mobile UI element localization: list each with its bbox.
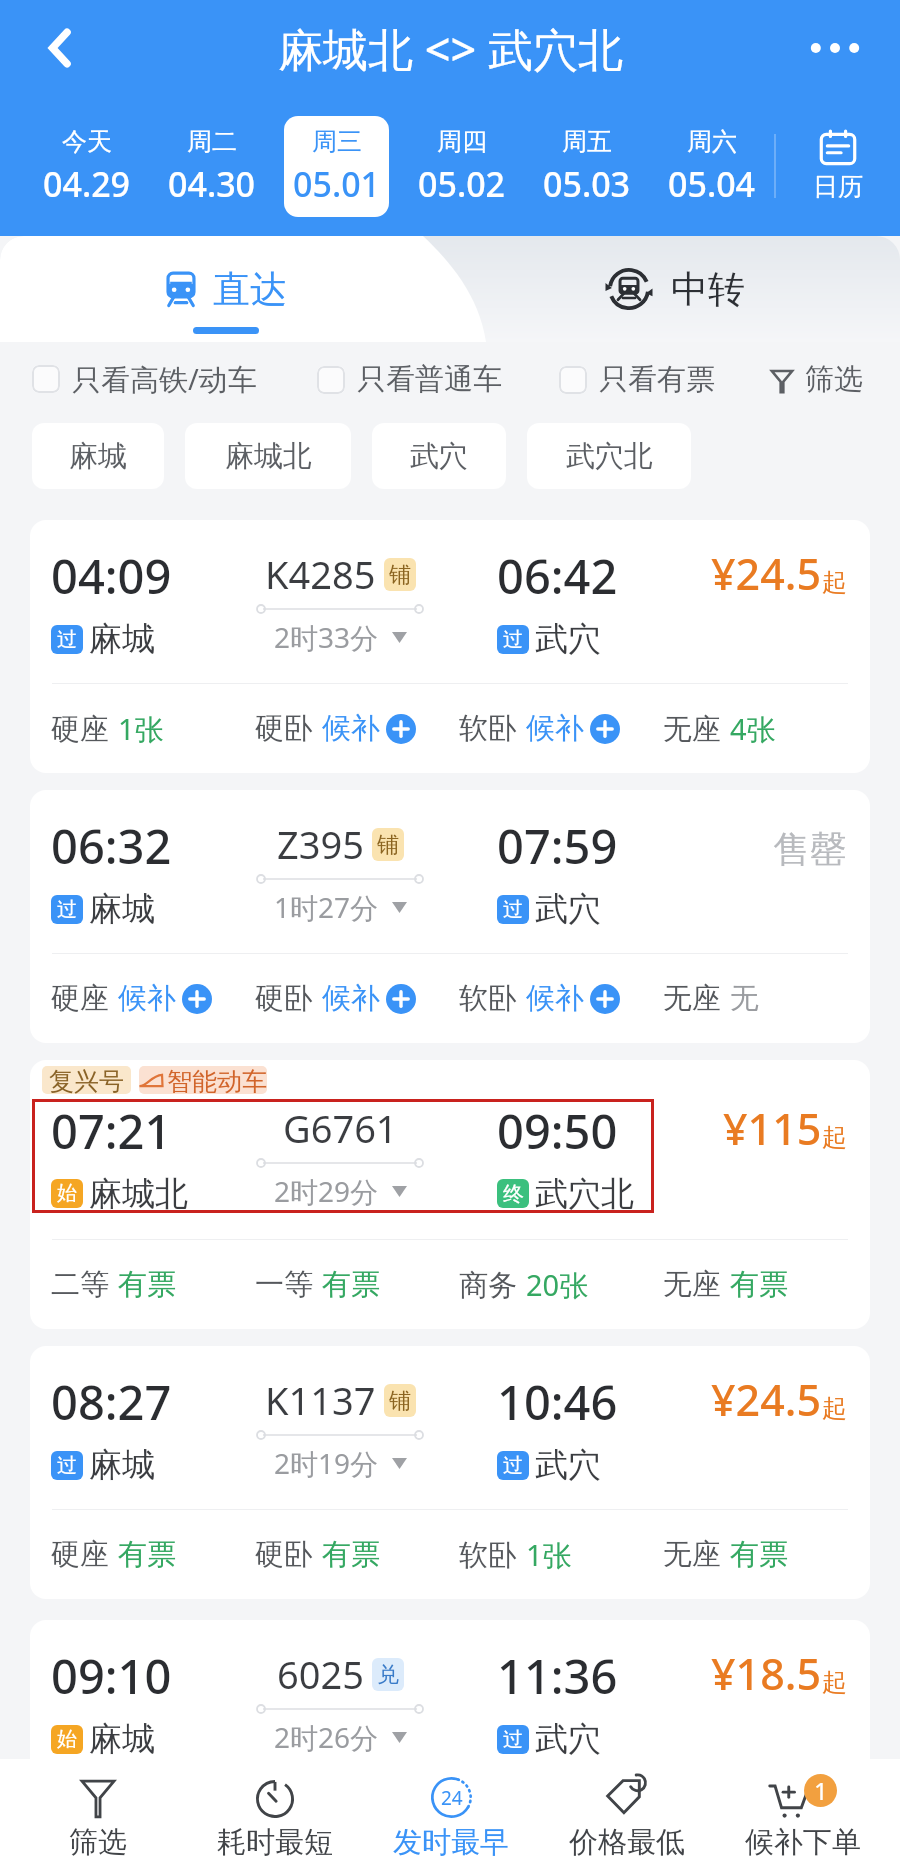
staticText: 过 — [503, 1727, 523, 1752]
staticText: ¥18.5 — [711, 1644, 822, 1703]
staticText: 1时27分 — [274, 888, 379, 926]
button[interactable]: 周三 — [284, 116, 389, 217]
staticText: 无座 — [663, 1266, 721, 1303]
staticText: 过 — [57, 627, 77, 652]
button[interactable]: 筛选 — [771, 361, 863, 398]
staticText: 起 — [822, 1122, 847, 1153]
staticText: 武穴 — [535, 618, 601, 660]
staticText: 候补 — [526, 710, 584, 747]
button[interactable]: 武穴北 — [527, 423, 691, 489]
button[interactable]: 只看普通车 — [317, 361, 502, 398]
button[interactable]: 麻城 — [32, 423, 164, 489]
staticText: 1张 — [526, 1535, 572, 1575]
button[interactable]: 08:27 — [30, 1346, 870, 1599]
button[interactable]: 周五 — [534, 116, 639, 217]
button[interactable]: 只看有票 — [559, 361, 715, 398]
staticText: 终 — [503, 1181, 524, 1207]
staticText: 武穴北 — [566, 438, 653, 475]
button[interactable]: 周二 — [159, 116, 264, 217]
staticText: 价格最低 — [569, 1824, 685, 1861]
button[interactable]: 筛选 — [9, 1759, 186, 1875]
staticText: 起 — [822, 1393, 847, 1424]
staticText: 无座 — [663, 980, 721, 1017]
staticText: ¥24.5 — [711, 1370, 822, 1429]
staticText: 只看普通车 — [357, 361, 502, 398]
staticText: ¥24.5 — [711, 544, 822, 603]
staticText: 筛选 — [805, 361, 863, 398]
staticText: 周五 — [562, 126, 612, 157]
button[interactable]: More options — [770, 0, 900, 96]
button[interactable]: 武穴 — [372, 423, 506, 489]
staticText: 武穴 — [535, 1444, 601, 1486]
staticText: 硬卧 — [255, 710, 313, 747]
staticText: 有票 — [730, 1266, 788, 1303]
staticText: 麻城北 <> 武穴北 — [278, 18, 623, 79]
button[interactable]: 日历 — [776, 96, 900, 236]
button[interactable]: 09:10 — [30, 1620, 870, 1783]
button[interactable]: 周四 — [409, 116, 514, 217]
button[interactable]: 价格最低 — [539, 1759, 715, 1875]
staticText: 过 — [503, 897, 523, 922]
staticText: 硬卧 — [255, 1536, 313, 1573]
button[interactable]: 中转 — [450, 236, 900, 342]
button[interactable]: 复兴号 — [30, 1060, 870, 1329]
button[interactable]: 今天 — [34, 116, 139, 217]
staticText: 09:10 — [51, 1644, 172, 1708]
staticText: 04:09 — [51, 544, 172, 608]
staticText: 有票 — [730, 1536, 788, 1573]
button[interactable]: 周六 — [659, 116, 764, 217]
staticText: 筛选 — [69, 1824, 127, 1861]
staticText: 有票 — [118, 1536, 176, 1573]
staticText: 07:21 — [51, 1099, 172, 1163]
button[interactable]: 06:32 — [30, 790, 870, 1043]
button[interactable]: 1 — [715, 1759, 891, 1875]
staticText: 武穴 — [410, 438, 468, 475]
staticText: 直达 — [213, 266, 287, 313]
staticText: 中转 — [671, 266, 745, 313]
staticText: 硬座 — [51, 711, 109, 748]
staticText: 铺 — [377, 831, 399, 859]
button[interactable]: 04:09 — [30, 520, 870, 773]
staticText: 无座 — [663, 711, 721, 748]
button[interactable]: 麻城北 — [185, 423, 351, 489]
staticText: 2时19分 — [274, 1444, 379, 1482]
staticText: 过 — [503, 627, 523, 652]
staticText: 11:36 — [497, 1644, 618, 1708]
staticText: Z395 — [277, 818, 364, 870]
staticText: 麻城 — [89, 1444, 155, 1486]
staticText: 铺 — [389, 1387, 411, 1415]
staticText: 商务 — [459, 1267, 517, 1304]
staticText: 日历 — [813, 171, 863, 202]
staticText: 武穴北 — [535, 1173, 634, 1213]
staticText: 候补下单 — [745, 1824, 861, 1861]
staticText: 10:46 — [497, 1370, 618, 1434]
staticText: 今天 — [62, 126, 112, 157]
staticText: 周六 — [687, 126, 737, 157]
staticText: 智能动车 — [167, 1066, 267, 1094]
staticText: 始 — [57, 1181, 77, 1206]
staticText: 售罄 — [773, 826, 847, 873]
staticText: 周二 — [187, 126, 237, 157]
staticText: 一等 — [255, 1266, 313, 1303]
staticText: 有票 — [322, 1266, 380, 1303]
button[interactable]: 只看高铁/动车 — [32, 359, 257, 399]
staticText: 06:42 — [497, 544, 618, 608]
button[interactable]: Back — [0, 0, 120, 96]
staticText: 复兴号 — [49, 1066, 124, 1094]
staticText: 铺 — [389, 561, 411, 589]
staticText: 发时最早 — [393, 1824, 509, 1861]
button[interactable]: 耗时最短 — [186, 1759, 363, 1875]
staticText: 麻城 — [89, 618, 155, 660]
button[interactable]: 24 — [363, 1759, 539, 1875]
staticText: 软卧 — [459, 1537, 517, 1574]
staticText: 4张 — [730, 709, 776, 749]
staticText: 2时33分 — [274, 618, 379, 656]
staticText: K1137 — [265, 1374, 376, 1426]
staticText: 05.04 — [668, 161, 756, 207]
staticText: 08:27 — [51, 1370, 172, 1434]
button[interactable]: 直达 — [0, 236, 450, 342]
staticText: 麻城 — [69, 438, 127, 475]
staticText: 武穴 — [535, 888, 601, 930]
staticText: 周三 — [312, 126, 362, 157]
staticText: 兑 — [377, 1661, 399, 1689]
